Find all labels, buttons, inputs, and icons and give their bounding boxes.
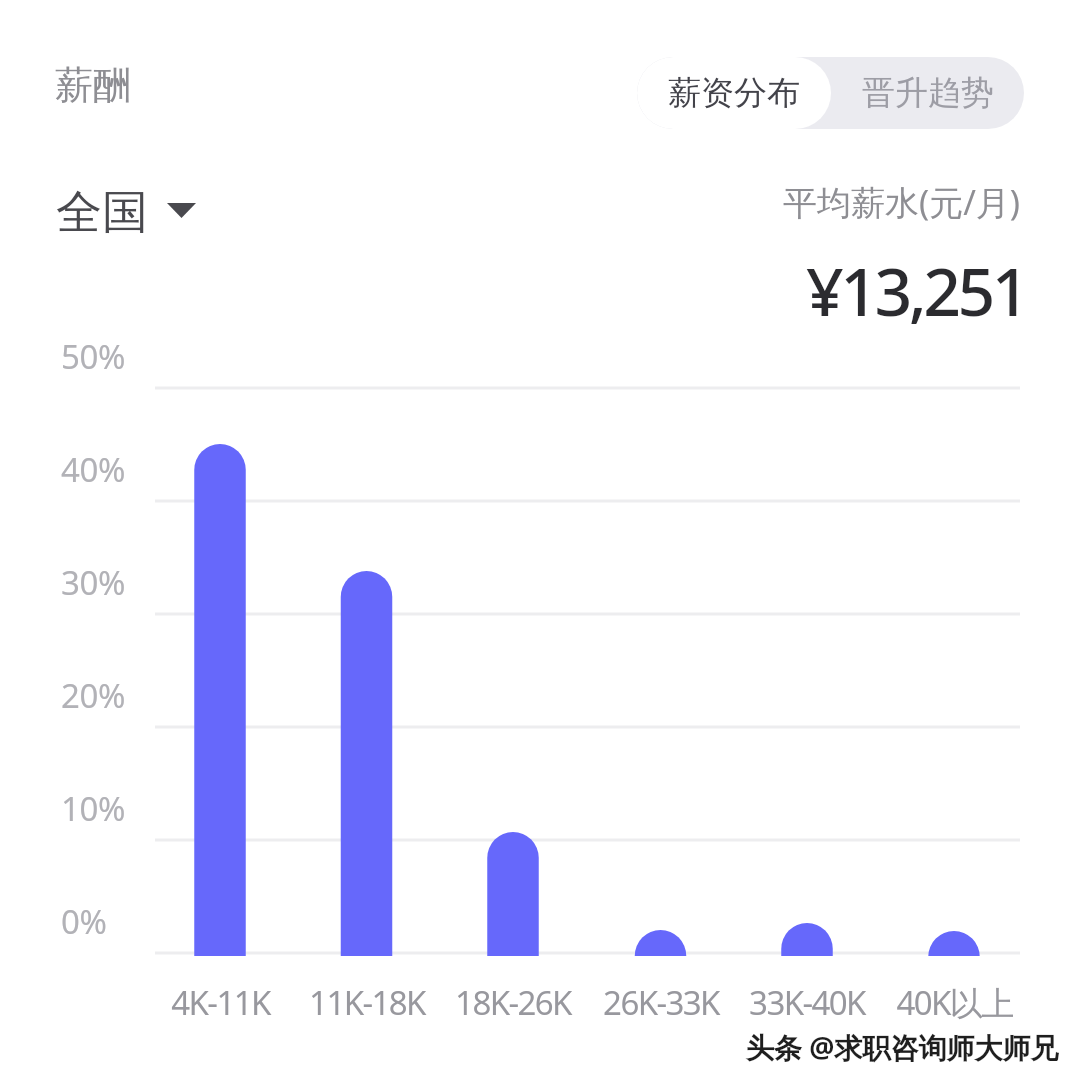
button[interactable]: 33K-40K (722, 979, 892, 1025)
staticText: 平均薪水(元/月) (783, 179, 1021, 225)
staticText: 薪酬 (55, 61, 131, 109)
staticText: 0% (61, 899, 107, 939)
staticText: 头条 @求职咨询师大师兄 (748, 1028, 1061, 1066)
staticText: 4K-11K (171, 980, 270, 1025)
button[interactable]: 18K-26K (428, 979, 598, 1025)
staticText: 头条 @求职咨询师大师兄 (744, 1026, 1057, 1064)
staticText: 30% (61, 560, 125, 600)
staticText: 18K-26K (455, 980, 571, 1025)
button[interactable]: 40K以上 (869, 979, 1039, 1025)
staticText: 头条 @求职咨询师大师兄 (744, 1028, 1057, 1066)
staticText: 头条 @求职咨询师大师兄 (748, 1026, 1061, 1064)
staticText: 40K以上 (896, 980, 1013, 1025)
button[interactable]: 26K-33K (576, 979, 746, 1025)
staticText: 40% (61, 447, 125, 487)
staticText: 头条 @求职咨询师大师兄 (746, 1030, 1059, 1068)
staticText: 50% (61, 334, 125, 374)
button[interactable]: 全国地区选择 (56, 184, 196, 242)
staticText: 20% (61, 673, 125, 713)
staticText: 26K-33K (603, 980, 719, 1025)
staticText: 薪资分布 (668, 72, 800, 114)
staticText: 晋升趋势 (862, 72, 994, 114)
button[interactable]: 11K-18K (282, 979, 452, 1025)
staticText: 头条 @求职咨询师大师兄 (746, 1026, 1059, 1064)
staticText: 头条 @求职咨询师大师兄 (746, 1028, 1059, 1066)
staticText: 头条 @求职咨询师大师兄 (744, 1030, 1057, 1068)
button[interactable]: 4K-11K (135, 979, 305, 1025)
staticText: 33K-40K (749, 980, 865, 1025)
staticText: 头条 @求职咨询师大师兄 (748, 1030, 1061, 1068)
staticText: 10% (61, 786, 125, 826)
staticText: ¥13,251 (806, 245, 1027, 335)
button[interactable]: 薪酬 (55, 61, 131, 109)
button[interactable]: 晋升趋势 (831, 57, 1024, 129)
staticText: 11K-18K (309, 980, 425, 1025)
button[interactable]: 薪资分布 (637, 57, 831, 129)
staticText: 全国 (56, 184, 148, 242)
